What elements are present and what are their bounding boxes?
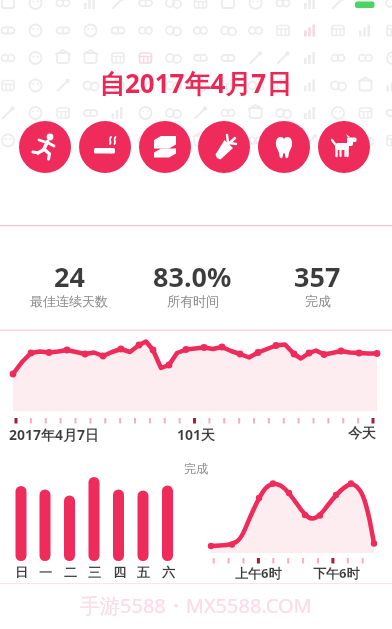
staticText: 2017年4月7日	[9, 425, 100, 444]
button[interactable]	[318, 121, 370, 173]
staticText: 手游5588・MX5588.COM	[80, 592, 312, 619]
staticText: 357	[294, 258, 341, 295]
staticText: 六	[162, 564, 175, 580]
staticText: 所有时间	[167, 293, 219, 309]
staticText: 最佳连续天数	[30, 293, 108, 309]
staticText: 上午6时	[235, 564, 282, 582]
button[interactable]: 自2017年4月7日	[0, 65, 392, 99]
staticText: 四	[113, 564, 126, 580]
staticText: 五	[137, 564, 150, 580]
staticText: 三	[88, 564, 101, 580]
staticText: 101天	[177, 425, 216, 444]
button[interactable]	[198, 121, 250, 173]
staticText: 一	[39, 564, 52, 580]
staticText: 下午6时	[313, 564, 360, 582]
staticText: 自2017年4月7日	[99, 65, 293, 99]
staticText: 24	[54, 258, 85, 295]
button[interactable]	[139, 121, 191, 173]
button[interactable]	[258, 121, 310, 173]
staticText: 二	[64, 564, 77, 580]
button[interactable]: 83.0%	[117, 258, 267, 311]
staticText: 完成	[305, 293, 331, 309]
button[interactable]: 24	[0, 258, 144, 311]
button[interactable]	[19, 121, 71, 173]
staticText: 日	[15, 564, 28, 580]
button[interactable]: 357	[242, 258, 392, 311]
staticText: 今天	[348, 425, 376, 443]
staticText: 83.0%	[153, 258, 232, 295]
button[interactable]	[79, 121, 131, 173]
staticText: 完成	[184, 461, 208, 476]
